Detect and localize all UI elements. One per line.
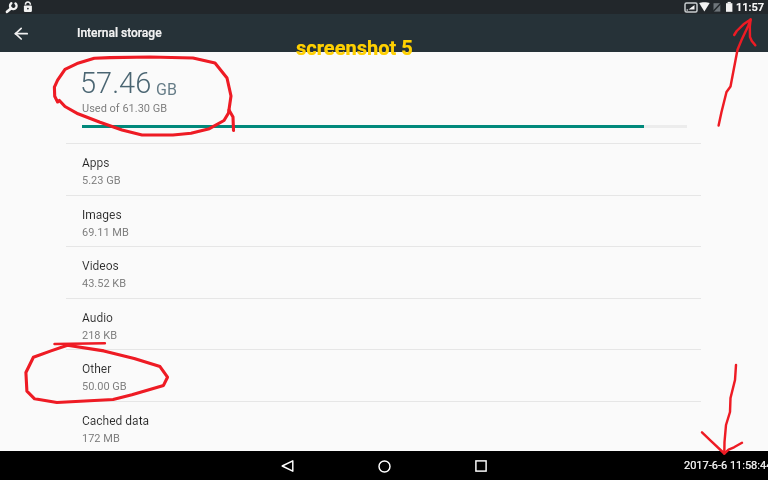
staticText: 11:57 (736, 1, 764, 14)
staticText: 69.11 MB (82, 226, 129, 239)
staticText: 5.23 GB (82, 174, 121, 187)
staticText: 172 MB (82, 432, 120, 445)
button[interactable]: Apps (0, 146, 768, 197)
button[interactable]: Home (371, 453, 397, 479)
staticText: Internal storage (77, 26, 162, 40)
staticText: Other (82, 362, 112, 376)
button[interactable]: Navigate up (2, 14, 42, 52)
button[interactable]: Back (275, 453, 301, 479)
button[interactable]: Cached data (0, 404, 768, 455)
staticText: Audio (82, 311, 113, 325)
staticText: Images (82, 208, 122, 222)
staticText: Apps (82, 156, 110, 170)
staticText: 50.00 GB (82, 380, 127, 393)
staticText: 2017-6-6 11:58:44 (684, 459, 768, 472)
staticText: 218 KB (82, 329, 118, 342)
staticText: 43.52 KB (82, 277, 127, 290)
staticText: Videos (82, 259, 119, 273)
button[interactable]: Images (0, 198, 768, 249)
button[interactable]: Recent apps (468, 453, 494, 479)
staticText: 57.46 (80, 66, 152, 100)
button[interactable]: Videos (0, 249, 768, 300)
staticText: screenshot 5 (296, 36, 413, 59)
button[interactable]: Other (0, 352, 768, 403)
staticText: Cached data (82, 414, 150, 428)
button[interactable]: Audio (0, 301, 768, 352)
staticText: GB (156, 80, 177, 99)
staticText: Used of 61.30 GB (82, 102, 168, 115)
